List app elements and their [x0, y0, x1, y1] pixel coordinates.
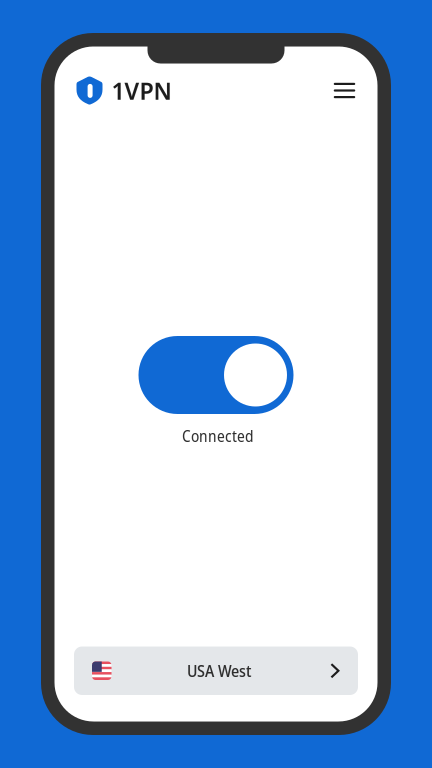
staticText: Connected: [182, 426, 254, 446]
button[interactable]: Disconnect VPN: [138, 336, 293, 414]
button[interactable]: 1VPN: [76, 75, 171, 105]
button[interactable]: USA West: [74, 646, 358, 695]
staticText: 1VPN: [111, 74, 171, 107]
staticText: USA West: [187, 660, 251, 682]
button[interactable]: Menu: [329, 75, 359, 105]
